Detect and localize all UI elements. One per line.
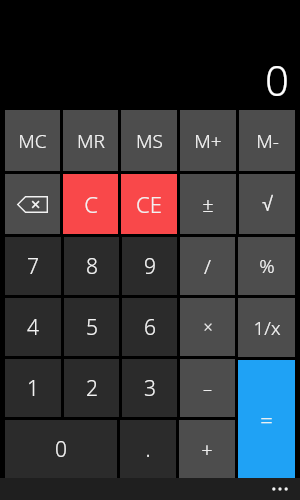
button[interactable]: MC bbox=[5, 110, 60, 171]
button[interactable]: % bbox=[238, 237, 295, 295]
button[interactable]: More options bbox=[260, 478, 300, 500]
staticText: 2 bbox=[86, 374, 98, 403]
staticText: % bbox=[259, 253, 275, 279]
button[interactable]: + bbox=[179, 420, 235, 478]
button[interactable]: M+ bbox=[180, 110, 236, 171]
button[interactable]: MS bbox=[121, 110, 177, 171]
button[interactable]: 5 bbox=[64, 298, 119, 356]
staticText: C bbox=[84, 189, 98, 219]
staticText: 9 bbox=[144, 252, 156, 281]
button[interactable]: . bbox=[120, 420, 176, 478]
staticText: CE bbox=[136, 189, 162, 219]
button[interactable]: M- bbox=[239, 110, 295, 171]
staticText: 7 bbox=[27, 252, 39, 281]
staticText: 1/x bbox=[253, 315, 281, 341]
staticText: M- bbox=[256, 128, 279, 154]
staticText: + bbox=[201, 436, 213, 463]
staticText: M+ bbox=[194, 128, 222, 154]
button[interactable]: ± bbox=[180, 174, 236, 234]
button[interactable]: CE bbox=[121, 174, 177, 234]
button[interactable]: C bbox=[63, 174, 118, 234]
staticText: 1 bbox=[27, 374, 39, 403]
staticText: 4 bbox=[27, 313, 39, 342]
button[interactable]: × bbox=[180, 298, 235, 356]
staticText: MR bbox=[77, 128, 105, 154]
staticText: 3 bbox=[144, 374, 156, 403]
button[interactable]: 6 bbox=[122, 298, 177, 356]
staticText: ± bbox=[202, 191, 214, 218]
staticText: 0 bbox=[55, 435, 67, 464]
button[interactable]: 1/x bbox=[238, 298, 295, 357]
staticText: MS bbox=[136, 128, 163, 154]
staticText: 8 bbox=[86, 252, 98, 281]
button[interactable]: Backspace bbox=[5, 174, 60, 234]
staticText: 6 bbox=[144, 313, 156, 342]
button[interactable]: 2 bbox=[64, 359, 119, 417]
staticText: – bbox=[203, 376, 212, 401]
staticText: MC bbox=[18, 128, 47, 154]
button[interactable]: / bbox=[180, 237, 235, 295]
button[interactable]: 8 bbox=[64, 237, 119, 295]
staticText: . bbox=[145, 435, 151, 464]
staticText: / bbox=[204, 253, 211, 280]
staticText: 0 bbox=[265, 51, 289, 108]
staticText: = bbox=[260, 404, 273, 434]
staticText: × bbox=[203, 316, 213, 338]
button[interactable]: = bbox=[238, 360, 295, 478]
button[interactable]: 0 bbox=[5, 420, 117, 478]
button[interactable]: √ bbox=[239, 174, 295, 234]
button[interactable]: 7 bbox=[5, 237, 61, 295]
button[interactable]: – bbox=[180, 359, 235, 417]
button[interactable]: MR bbox=[63, 110, 118, 171]
staticText: 5 bbox=[86, 313, 98, 342]
button[interactable]: 3 bbox=[122, 359, 177, 417]
staticText: √ bbox=[262, 193, 273, 215]
button[interactable]: 4 bbox=[5, 298, 61, 356]
button[interactable]: 1 bbox=[5, 359, 61, 417]
button[interactable]: 9 bbox=[122, 237, 177, 295]
